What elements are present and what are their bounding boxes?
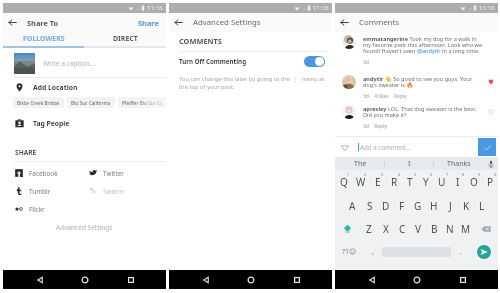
button[interactable]: Bixby Creek Bridge: [13, 97, 64, 108]
staticText: N: [446, 222, 454, 236]
button[interactable]: Back: [30, 270, 49, 289]
staticText: D: [382, 199, 390, 213]
button[interactable]: FOLLOWERS: [3, 32, 84, 46]
button[interactable]: R: [386, 170, 402, 194]
button[interactable]: Back: [3, 13, 22, 32]
button[interactable]: DIRECT: [84, 32, 166, 46]
button[interactable]: Y: [418, 170, 434, 194]
button[interactable]: Swarm: [84, 182, 166, 200]
button[interactable]: Add Location: [3, 78, 166, 97]
button[interactable]: Home: [75, 270, 94, 289]
button[interactable]: H: [426, 194, 442, 217]
staticText: G: [414, 199, 422, 213]
button[interactable]: Tag People: [3, 108, 166, 138]
staticText: .: [460, 247, 462, 257]
button[interactable]: .: [451, 240, 470, 264]
staticText: E: [375, 175, 381, 189]
button[interactable]: Backspace: [474, 217, 498, 240]
button[interactable]: J: [442, 194, 458, 217]
staticText: Y: [423, 175, 429, 189]
button[interactable]: Post comment: [478, 138, 496, 156]
button[interactable]: Share: [131, 15, 166, 31]
button[interactable]: T: [402, 170, 418, 194]
button[interactable]: I: [450, 170, 466, 194]
staticText: emmatangerine Took my dog for a walk in …: [363, 35, 485, 54]
button[interactable]: Recents: [287, 270, 306, 289]
button[interactable]: P: [482, 170, 498, 194]
button[interactable]: ?1☺: [335, 240, 363, 264]
button[interactable]: Back: [335, 13, 354, 32]
staticText: 8: [462, 172, 465, 177]
button[interactable]: andytlr 👋 So good to see you guys. Your …: [335, 72, 498, 100]
staticText: Thanks: [447, 159, 471, 169]
button[interactable]: Tumblr: [3, 182, 84, 200]
staticText: Facebook: [29, 169, 58, 178]
staticText: Q: [340, 175, 348, 189]
staticText: 0: [494, 172, 497, 177]
button[interactable]: V: [410, 217, 426, 240]
button[interactable]: ,: [363, 240, 382, 264]
button[interactable]: The: [335, 157, 385, 170]
button[interactable]: Voice input: [483, 157, 498, 170]
button[interactable]: O: [466, 170, 482, 194]
button[interactable]: Like: [485, 105, 497, 119]
button[interactable]: Home: [241, 270, 260, 289]
button[interactable]: Back: [362, 270, 381, 289]
button[interactable]: Add sticker: [335, 138, 354, 157]
button[interactable]: Back: [196, 270, 215, 289]
button[interactable]: G: [410, 194, 426, 217]
staticText: P: [487, 175, 494, 189]
button[interactable]: Home: [407, 270, 426, 289]
staticText: O: [470, 175, 478, 189]
button[interactable]: Turn off commenting: [304, 56, 325, 67]
staticText: 11:16: [479, 4, 495, 12]
button[interactable]: Big Sur, California: [67, 97, 115, 108]
button[interactable]: Thanks: [434, 157, 483, 170]
button[interactable]: Send: [470, 240, 498, 264]
staticText: Pfeiffer Big Sur State Pa: [122, 100, 162, 105]
button[interactable]: E: [369, 170, 386, 194]
staticText: Tumblr: [29, 187, 51, 196]
button[interactable]: Advanced Settings: [3, 221, 166, 234]
button[interactable]: Shift: [335, 217, 360, 240]
button[interactable]: Back: [169, 13, 188, 32]
staticText: Turn Off Commenting: [179, 57, 247, 65]
button[interactable]: M: [458, 217, 474, 240]
staticText: L: [479, 199, 485, 213]
staticText: I: [456, 175, 460, 189]
staticText: S: [367, 199, 373, 213]
staticText: ,: [372, 247, 374, 257]
button[interactable]: U: [434, 170, 450, 194]
button[interactable]: apresley LOL. That dog sweater is the be…: [335, 102, 498, 130]
button[interactable]: Like: [485, 75, 497, 89]
staticText: H: [430, 199, 438, 213]
button[interactable]: B: [426, 217, 442, 240]
button[interactable]: A: [344, 194, 361, 217]
button[interactable]: I: [385, 157, 434, 170]
button[interactable]: K: [458, 194, 474, 217]
button[interactable]: Recents: [121, 270, 140, 289]
button[interactable]: Pfeiffer Big Sur State Pa: [118, 97, 166, 108]
button[interactable]: D: [378, 194, 394, 217]
staticText: 11:16: [313, 4, 329, 12]
button[interactable]: Z: [360, 217, 377, 240]
button[interactable]: Flickr: [3, 200, 84, 218]
button[interactable]: N: [442, 217, 458, 240]
button[interactable]: L: [474, 194, 490, 217]
button[interactable]: emmatangerine Took my dog for a walk in …: [335, 32, 498, 66]
staticText: 11:16: [147, 4, 163, 12]
staticText: I: [408, 159, 411, 169]
button[interactable]: Twitter: [84, 164, 166, 182]
staticText: F: [399, 199, 405, 213]
button[interactable]: C: [394, 217, 410, 240]
button[interactable]: F: [394, 194, 410, 217]
staticText: Twitter: [103, 169, 124, 178]
button[interactable]: S: [361, 194, 378, 217]
button[interactable]: Facebook: [3, 164, 84, 182]
button[interactable]: W: [352, 170, 369, 194]
button[interactable]: Recents: [453, 270, 472, 289]
button[interactable]: X: [377, 217, 394, 240]
button[interactable]: Q: [335, 170, 352, 194]
